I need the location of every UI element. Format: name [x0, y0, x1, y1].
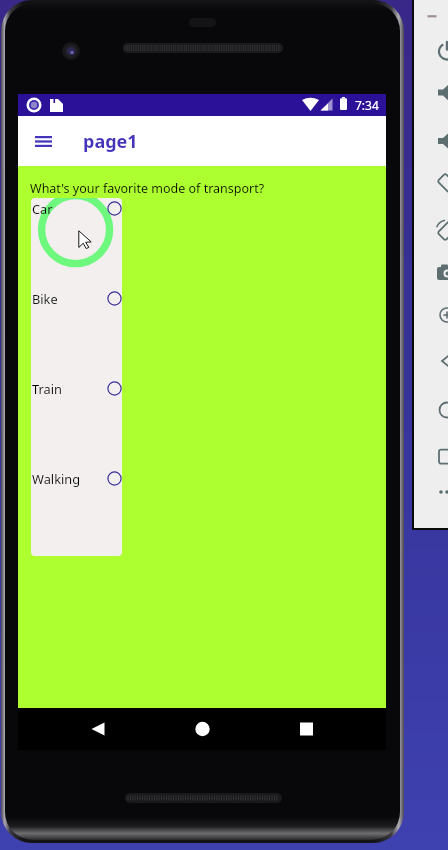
button[interactable]: Home	[189, 716, 215, 742]
staticText: Train	[32, 380, 62, 397]
button[interactable]: Recent apps	[293, 716, 319, 742]
staticText: page1	[83, 129, 138, 154]
button[interactable]: Car	[31, 198, 122, 288]
staticText: Car	[32, 200, 53, 217]
staticText: Bike	[32, 290, 58, 307]
button[interactable]: Bike	[31, 288, 122, 378]
button[interactable]: Back	[85, 716, 111, 742]
button[interactable]: Walking	[31, 468, 122, 556]
staticText: Walking	[32, 470, 81, 487]
staticText: What's your favorite mode of transport?	[30, 180, 265, 197]
button[interactable]: Open navigation menu	[23, 121, 63, 161]
button[interactable]: Train	[31, 378, 122, 468]
staticText: 7:34	[355, 97, 379, 113]
